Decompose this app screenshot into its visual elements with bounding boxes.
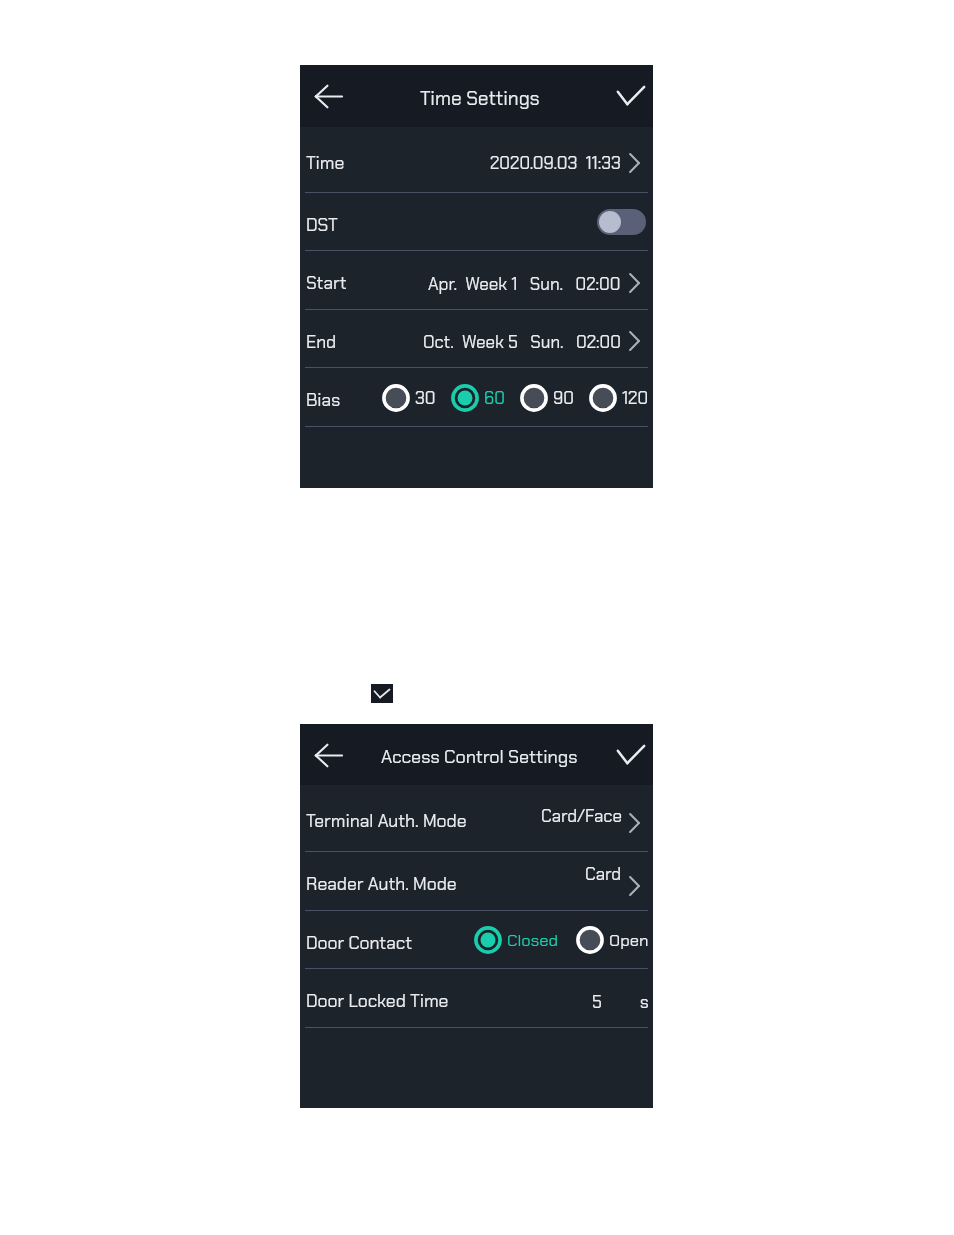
staticText: 120 [622, 387, 649, 409]
staticText: 30 [415, 387, 436, 409]
staticText: Time [306, 152, 345, 175]
staticText: Time Settings [420, 86, 540, 111]
staticText: Bias [306, 389, 341, 412]
staticText: Door Locked Time [306, 990, 449, 1013]
button[interactable]: 120 [589, 384, 649, 412]
button[interactable]: Confirm [614, 79, 648, 113]
button[interactable]: 30 [382, 384, 436, 412]
staticText: Start [306, 272, 347, 295]
button[interactable]: Confirm icon [371, 684, 393, 703]
staticText: Apr. Week 1 Sun. 02:00 [428, 273, 621, 295]
staticText: 90 [553, 387, 574, 409]
staticText: Open [609, 930, 649, 951]
staticText: Closed [507, 930, 558, 951]
button[interactable]: Back [311, 738, 345, 772]
button[interactable]: Open [576, 926, 649, 954]
button[interactable]: 90 [520, 384, 574, 412]
button[interactable]: 60 [451, 384, 505, 412]
staticText: Terminal Auth. Mode [306, 810, 467, 833]
staticText: Door Contact [306, 932, 412, 955]
staticText: End [306, 331, 337, 354]
button[interactable]: Back [311, 79, 345, 113]
staticText: Oct. Week 5 Sun. 02:00 [423, 331, 621, 353]
button[interactable]: Reader Auth. Mode [300, 852, 653, 911]
button[interactable]: Closed [474, 926, 558, 954]
staticText: s [640, 991, 649, 1013]
staticText: 5 [592, 991, 602, 1013]
staticText: DST [306, 214, 338, 237]
staticText: 60 [484, 387, 505, 409]
button[interactable]: Confirm [614, 738, 648, 772]
staticText: Reader Auth. Mode [306, 873, 457, 896]
staticText: Card/Face [541, 805, 622, 827]
staticText: Access Control Settings [381, 745, 578, 768]
staticText: Card [585, 863, 622, 885]
button[interactable]: Start [300, 251, 653, 310]
button[interactable]: Time [300, 127, 653, 193]
button[interactable]: Door Locked Time [300, 969, 653, 1028]
staticText: 2020.09.03 11:33 [490, 152, 621, 174]
button[interactable]: End [300, 310, 653, 368]
button[interactable]: Terminal Auth. Mode [300, 785, 653, 852]
button[interactable]: Daylight saving time switch, off [597, 209, 646, 235]
